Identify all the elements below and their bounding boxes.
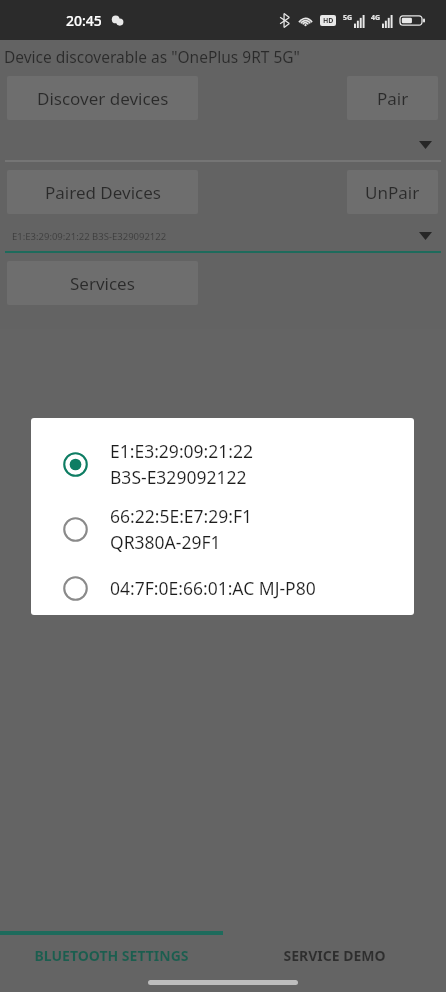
staticText: Discover devices xyxy=(37,87,169,110)
staticText: UnPair xyxy=(365,181,420,204)
staticText: SERVICE DEMO xyxy=(283,946,386,965)
staticText: Pair xyxy=(377,87,409,110)
button[interactable]: Services xyxy=(7,261,198,305)
staticText: Paired Devices xyxy=(45,181,161,204)
button[interactable]: Pair xyxy=(347,76,438,120)
staticText: E1:E3:29:09:21:22 xyxy=(110,439,254,463)
button[interactable]: Paired Devices xyxy=(7,170,198,214)
staticText: HD xyxy=(323,16,334,26)
button[interactable]: UnPair xyxy=(347,170,438,214)
button[interactable]: E1:E3:29:09:21:22 B3S-E329092122 xyxy=(5,221,441,253)
staticText: Services xyxy=(70,272,135,295)
button[interactable]: BLUETOOTH SETTINGS xyxy=(0,935,223,975)
staticText: 20:45 xyxy=(66,11,102,30)
other: Open dropdown xyxy=(419,232,432,240)
staticText: 66:22:5E:E7:29:F1 xyxy=(110,504,253,528)
staticText: Device discoverable as "OnePlus 9RT 5G" xyxy=(4,46,300,67)
other: Selected xyxy=(63,452,88,477)
other: Open dropdown xyxy=(419,141,432,149)
staticText: E1:E3:29:09:21:22 B3S-E329092122 xyxy=(12,230,167,243)
staticText: B3S-E329092122 xyxy=(110,465,247,489)
button[interactable]: Not selected xyxy=(31,562,414,615)
staticText: 4G xyxy=(371,13,381,23)
button[interactable]: Discover devices xyxy=(7,76,198,120)
button[interactable]: Not selected xyxy=(31,497,414,562)
staticText: QR380A-29F1 xyxy=(110,530,221,554)
button[interactable]: Selected xyxy=(31,432,414,497)
other: Not selected xyxy=(63,576,88,601)
other: Not selected xyxy=(63,517,88,542)
staticText: 04:7F:0E:66:01:AC MJ-P80 xyxy=(110,576,316,600)
button[interactable]: SERVICE DEMO xyxy=(223,935,446,975)
staticText: BLUETOOTH SETTINGS xyxy=(34,946,189,965)
staticText: 5G xyxy=(343,13,353,23)
button[interactable]: Open dropdown xyxy=(5,130,441,162)
